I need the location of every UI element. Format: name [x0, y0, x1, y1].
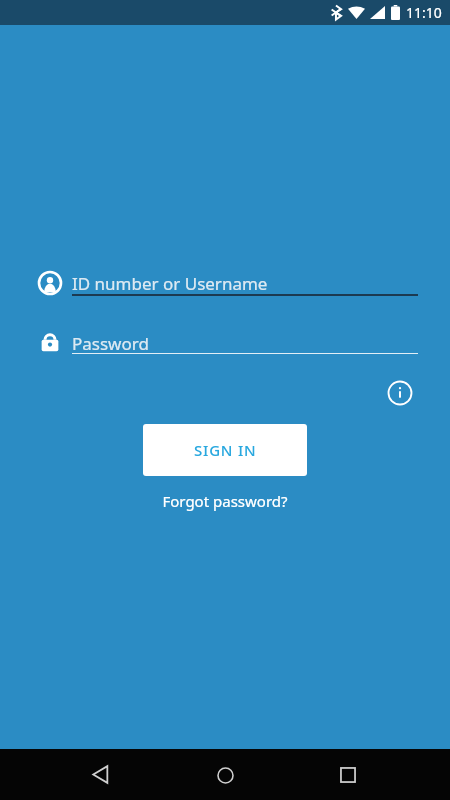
staticText: Forgot password?	[162, 491, 288, 511]
staticText: 11:10	[406, 3, 442, 22]
button[interactable]: ID number or Username	[72, 266, 418, 300]
button[interactable]: Recent apps	[326, 749, 370, 800]
button[interactable]: SIGN IN	[143, 424, 307, 476]
other: User account	[36, 269, 64, 297]
button[interactable]: Back	[78, 749, 122, 800]
staticText: Password	[72, 332, 149, 355]
staticText: ID number or Username	[72, 272, 268, 295]
button[interactable]: Forgot password?	[0, 487, 450, 515]
staticText: SIGN IN	[194, 440, 257, 460]
other: Password lock	[37, 329, 63, 355]
button[interactable]: Password	[72, 326, 418, 360]
button[interactable]: Home	[203, 753, 247, 797]
button[interactable]: Information	[384, 377, 416, 409]
